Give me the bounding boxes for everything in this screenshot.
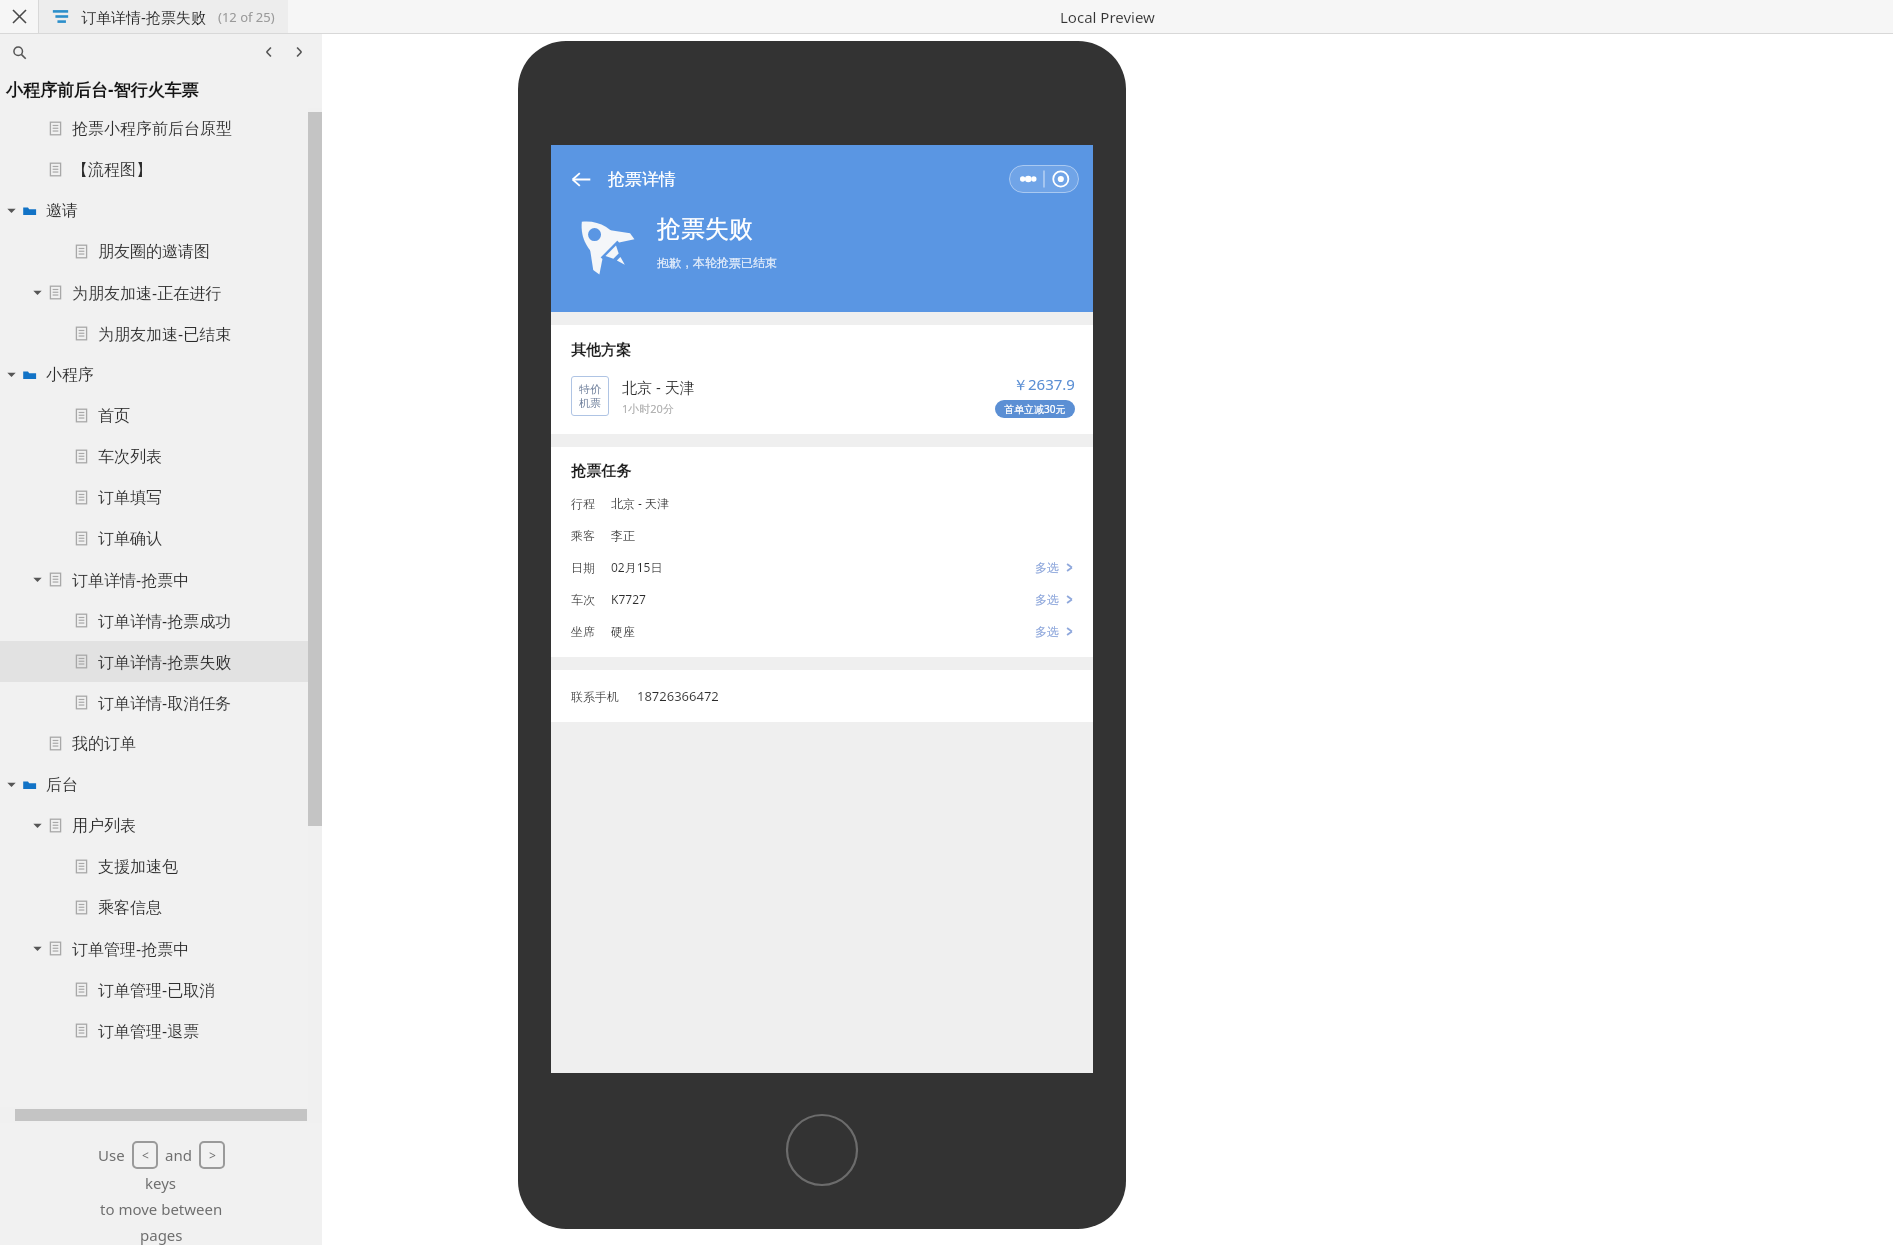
staticText: 行程: [571, 496, 595, 511]
button[interactable]: 邀请: [0, 190, 308, 231]
staticText: 抢票小程序前后台原型: [72, 119, 232, 139]
staticText: Local Preview: [1060, 7, 1155, 27]
staticText: K7727: [611, 591, 646, 607]
button[interactable]: 朋友圈的邀请图: [0, 231, 308, 272]
button[interactable]: 车次: [571, 583, 1075, 615]
staticText: 北京 - 天津: [622, 377, 695, 397]
button[interactable]: 车次列表: [0, 436, 308, 477]
staticText: 首页: [98, 406, 130, 426]
staticText: 抱歉，本轮抢票已结束: [657, 255, 777, 270]
button[interactable]: 乘客信息: [0, 887, 308, 928]
button[interactable]: 订单详情-抢票成功: [0, 600, 308, 641]
staticText: 小程序: [46, 365, 94, 385]
staticText: to move between: [100, 1199, 223, 1219]
button[interactable]: 为朋友加速-已结束: [0, 313, 308, 354]
staticText: pages: [140, 1225, 183, 1245]
button[interactable]: Search: [6, 39, 32, 65]
staticText: 订单详情-抢票失败: [81, 7, 206, 27]
button[interactable]: 订单管理-退票: [0, 1010, 308, 1051]
staticText: 硬座: [611, 624, 635, 639]
staticText: 小程序前后台-智行火车票: [6, 78, 199, 101]
staticText: 为朋友加速-正在进行: [72, 282, 222, 304]
button[interactable]: 支援加速包: [0, 846, 308, 887]
staticText: 抢票任务: [571, 462, 631, 481]
button[interactable]: 订单确认: [0, 518, 308, 559]
staticText: 抢票失败: [657, 214, 753, 244]
staticText: 订单管理-已取消: [98, 979, 216, 1001]
staticText: 为朋友加速-已结束: [98, 323, 232, 345]
staticText: 02月15日: [611, 559, 663, 575]
button[interactable]: 【流程图】: [0, 149, 308, 190]
staticText: 订单详情-抢票中: [72, 569, 190, 591]
button[interactable]: 我的订单: [0, 723, 308, 764]
staticText: and: [165, 1145, 192, 1165]
staticText: <: [142, 1147, 149, 1163]
button[interactable]: Close: [0, 0, 38, 33]
button[interactable]: Home: [785, 1113, 859, 1187]
staticText: 后台: [46, 775, 78, 795]
staticText: keys: [145, 1173, 177, 1193]
staticText: 北京 - 天津: [611, 495, 670, 511]
button[interactable]: 小程序: [0, 354, 308, 395]
staticText: >: [209, 1147, 216, 1163]
button[interactable]: 用户列表: [0, 805, 308, 846]
staticText: 订单确认: [98, 529, 162, 549]
button[interactable]: 特价: [571, 374, 1075, 418]
staticText: 坐席: [571, 624, 595, 639]
staticText: 机票: [579, 396, 601, 410]
button[interactable]: 乘客: [571, 519, 1075, 551]
staticText: 多选: [1035, 560, 1059, 575]
staticText: 支援加速包: [98, 857, 178, 877]
button[interactable]: 订单管理-抢票中: [0, 928, 308, 969]
button[interactable]: 订单详情-抢票失败: [0, 641, 308, 682]
staticText: 乘客: [571, 528, 595, 543]
staticText: 订单填写: [98, 488, 162, 508]
staticText: 朋友圈的邀请图: [98, 242, 210, 262]
staticText: 多选: [1035, 592, 1059, 607]
button[interactable]: 订单详情-取消任务: [0, 682, 308, 723]
button[interactable]: 订单详情-抢票失败: [39, 0, 288, 33]
button[interactable]: 坐席: [571, 615, 1075, 647]
staticText: 【流程图】: [72, 160, 152, 180]
staticText: 多选: [1035, 624, 1059, 639]
staticText: 订单详情-取消任务: [98, 692, 232, 714]
staticText: ￥2637.9: [1013, 374, 1075, 394]
staticText: 订单详情-抢票失败: [98, 651, 232, 673]
button[interactable]: 订单填写: [0, 477, 308, 518]
button[interactable]: 行程: [571, 487, 1075, 519]
staticText: 其他方案: [571, 341, 631, 360]
button[interactable]: 后台: [0, 764, 308, 805]
staticText: 乘客信息: [98, 898, 162, 918]
button[interactable]: 为朋友加速-正在进行: [0, 272, 308, 313]
staticText: 订单管理-退票: [98, 1020, 200, 1042]
staticText: 日期: [571, 560, 595, 575]
button[interactable]: 日期: [571, 551, 1075, 583]
staticText: 抢票详情: [608, 169, 676, 190]
staticText: 车次列表: [98, 447, 162, 467]
button[interactable]: Next page: [284, 37, 314, 67]
button[interactable]: Mini program menu: [1009, 165, 1079, 193]
staticText: 邀请: [46, 201, 78, 221]
staticText: 1小时20分: [622, 401, 674, 416]
button[interactable]: 抢票小程序前后台原型: [0, 108, 308, 149]
staticText: (12 of 25): [218, 8, 275, 26]
button[interactable]: 首页: [0, 395, 308, 436]
button[interactable]: 订单详情-抢票中: [0, 559, 308, 600]
button[interactable]: 订单管理-已取消: [0, 969, 308, 1010]
staticText: 订单管理-抢票中: [72, 938, 190, 960]
button[interactable]: 联系手机: [551, 670, 1093, 722]
staticText: 18726366472: [637, 687, 719, 705]
button[interactable]: Back: [568, 166, 594, 192]
staticText: 我的订单: [72, 734, 136, 754]
staticText: 联系手机: [571, 689, 619, 704]
staticText: 首单立减30元: [1004, 402, 1066, 416]
staticText: 车次: [571, 592, 595, 607]
staticText: 特价: [579, 382, 601, 396]
staticText: 订单详情-抢票成功: [98, 610, 232, 632]
staticText: 用户列表: [72, 816, 136, 836]
button[interactable]: Previous page: [254, 37, 284, 67]
staticText: Use: [98, 1145, 125, 1165]
staticText: 李正: [611, 528, 635, 543]
